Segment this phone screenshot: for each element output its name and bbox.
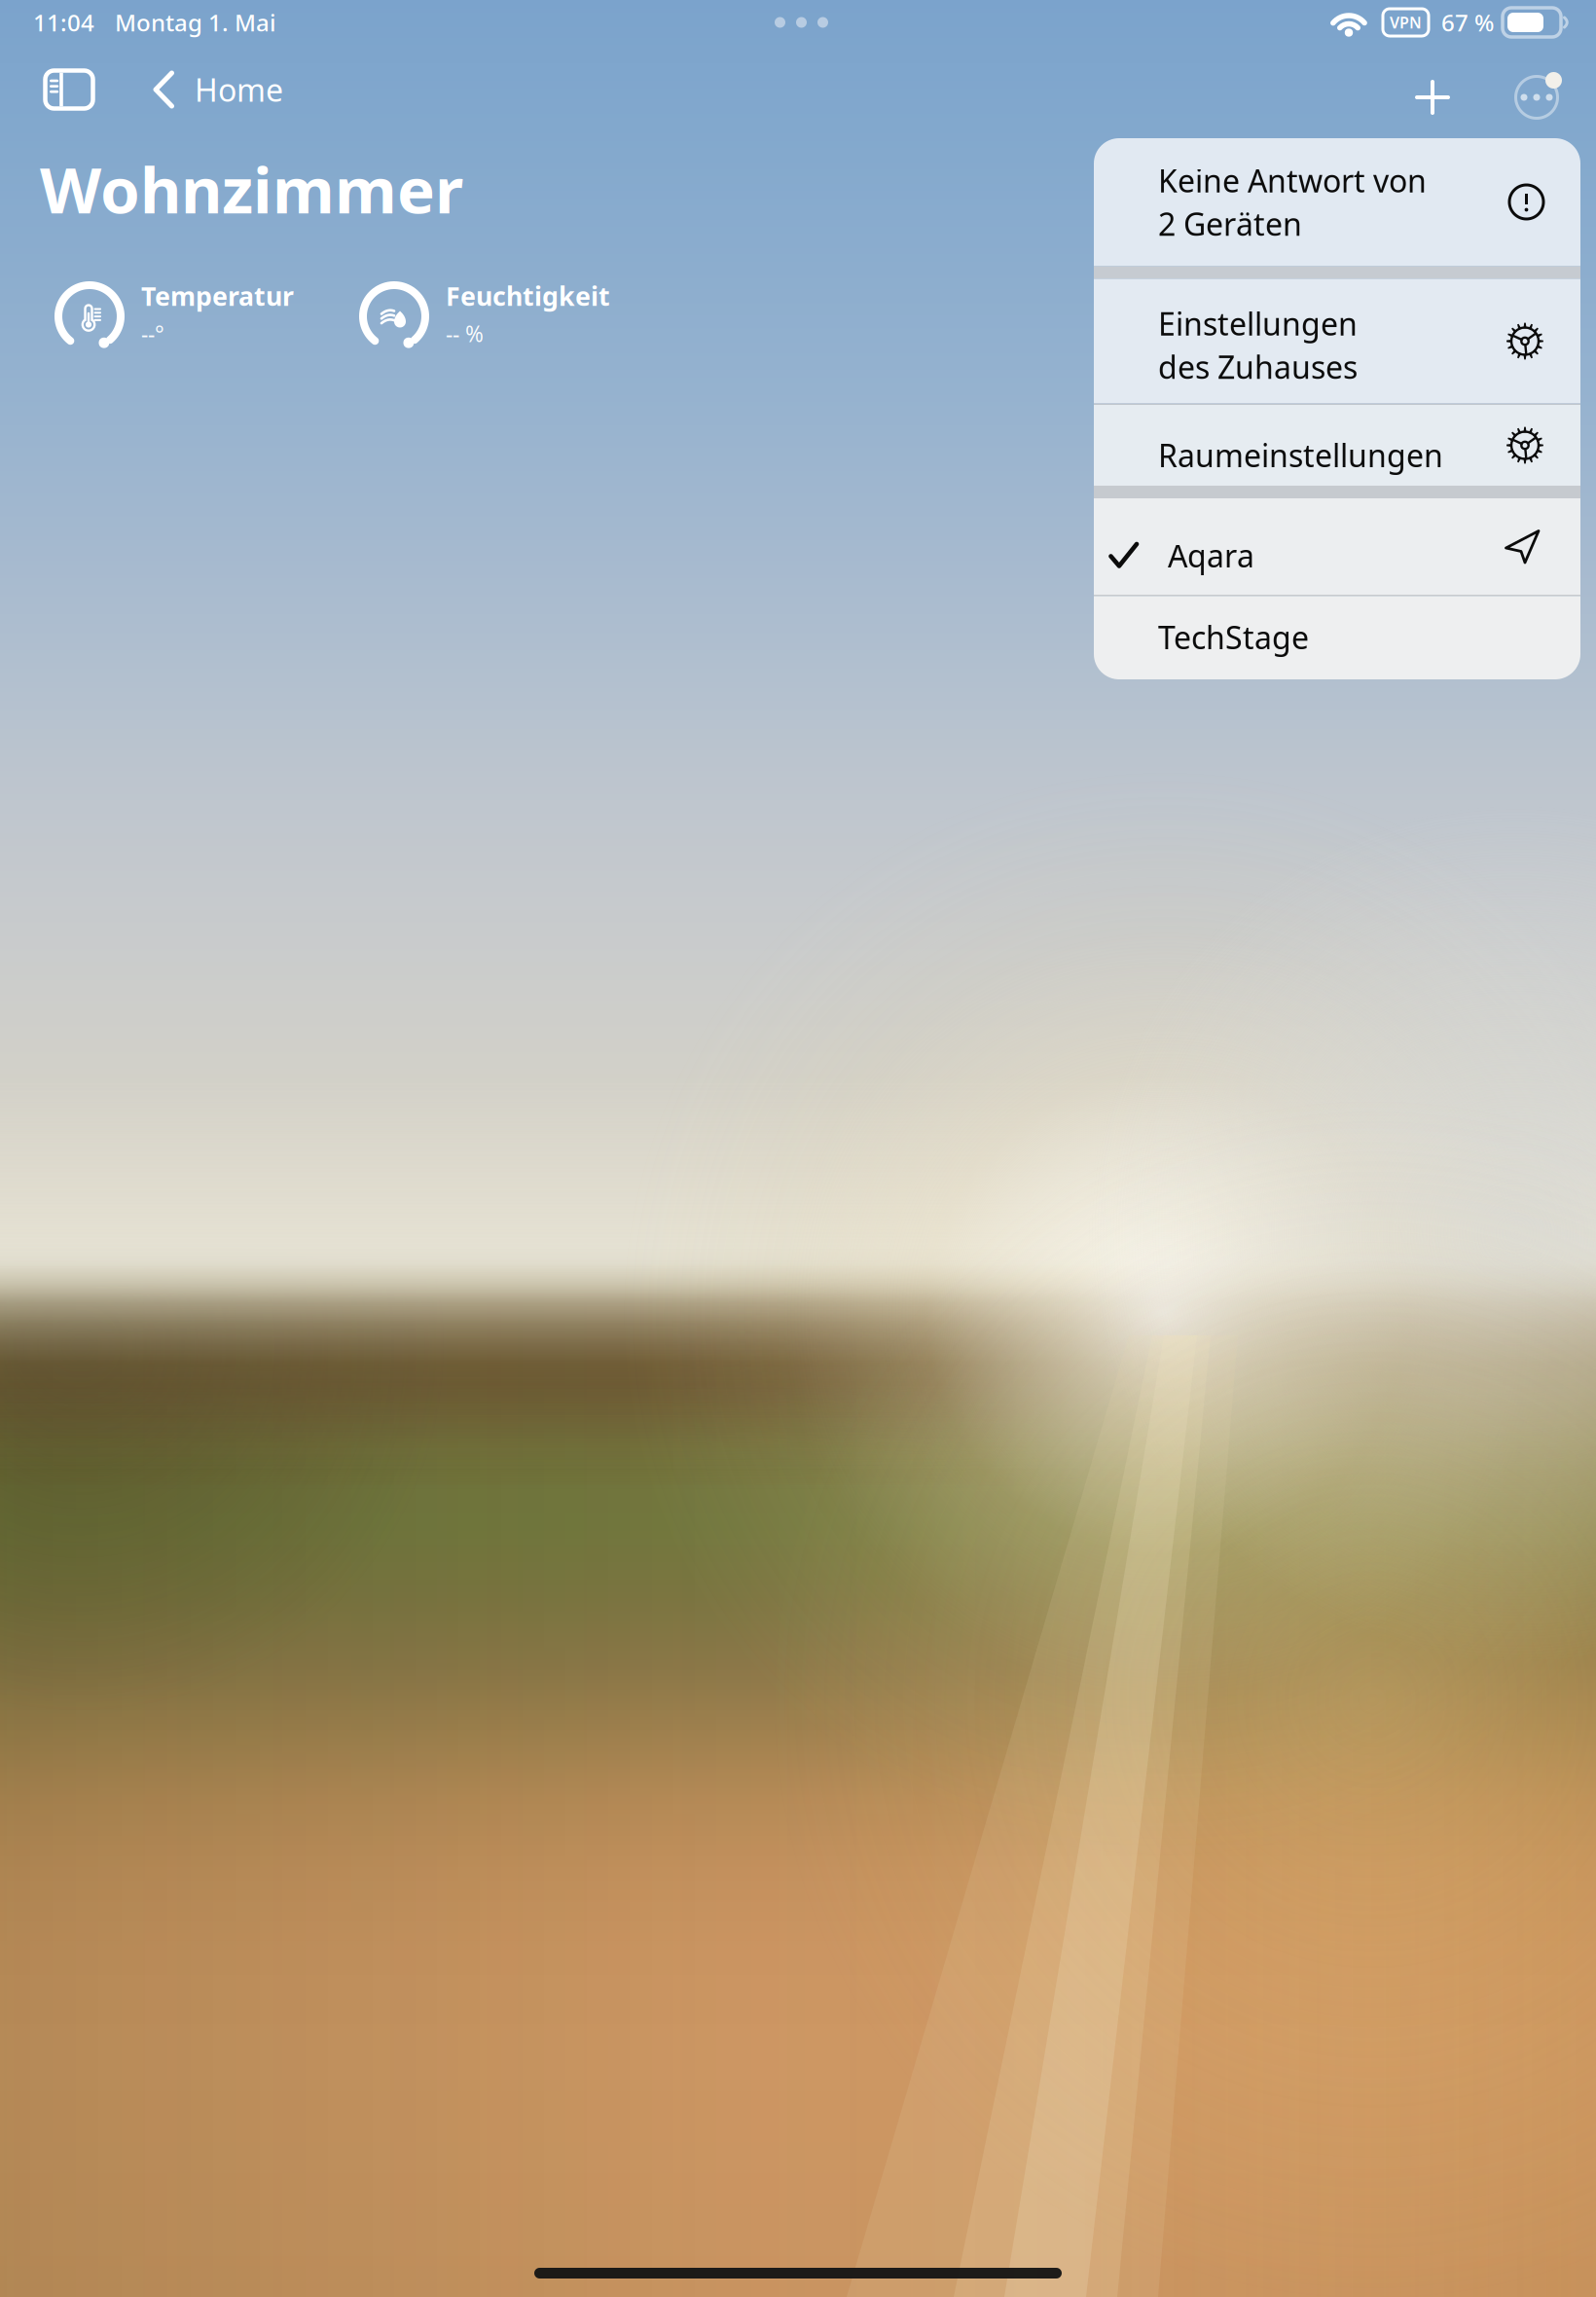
staticText: Raumeinstellungen [1158,434,1443,476]
staticText: VPN [1390,12,1422,33]
staticText: Aqara [1168,535,1254,576]
staticText: des Zuhauses [1158,346,1358,387]
staticText: 11:04 [33,7,94,38]
staticText: 67 % [1441,7,1494,38]
staticText: Wohnzimmer [40,147,463,231]
button[interactable]: Add Accessory or Scene [1397,62,1468,132]
staticText: --° [141,319,164,348]
staticText: Einstellungen [1158,303,1358,344]
staticText: TechStage [1158,616,1309,658]
button[interactable]: Aqara [1094,498,1580,595]
button[interactable]: Home [145,55,291,124]
staticText: -- % [446,319,484,348]
button[interactable]: TechStage [1094,596,1580,680]
button[interactable]: More Options [1501,61,1573,133]
button[interactable]: Show Sidebar [34,55,104,124]
staticText: Montag 1. Mai [115,7,275,38]
staticText: Temperatur [141,279,294,313]
button[interactable]: Einstellungen [1094,279,1580,403]
staticText: Feuchtigkeit [446,279,610,313]
button[interactable]: Keine Antwort von [1094,138,1580,266]
staticText: Keine Antwort von [1158,160,1427,201]
staticText: 2 Geräten [1158,203,1302,244]
button[interactable]: Raumeinstellungen [1094,405,1580,486]
staticText: Home [195,69,283,110]
